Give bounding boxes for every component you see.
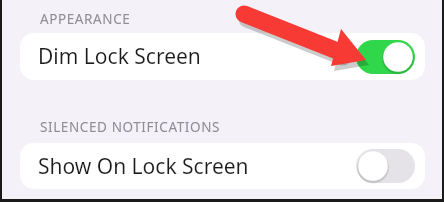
button[interactable]: Toggle on [356, 40, 415, 74]
staticText: APPEARANCE [40, 10, 131, 28]
staticText: Show On Lock Screen [38, 152, 249, 181]
staticText: Dim Lock Screen [38, 42, 201, 71]
staticText: SILENCED NOTIFICATIONS [40, 118, 221, 136]
button[interactable]: Dim Lock Screen [20, 33, 425, 80]
button[interactable]: Show On Lock Screen [20, 143, 425, 189]
button[interactable]: Toggle off [356, 149, 415, 183]
